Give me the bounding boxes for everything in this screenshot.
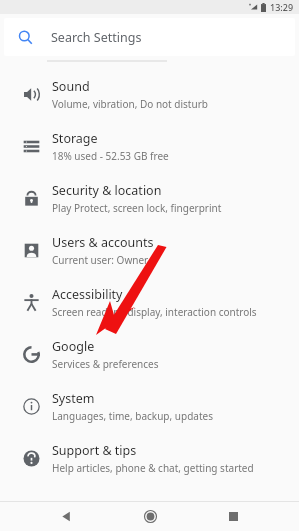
staticText: Support & tips <box>52 442 137 459</box>
button[interactable]: Recent apps <box>216 501 250 531</box>
button[interactable]: Accessibility <box>0 276 299 328</box>
button[interactable]: Storage <box>0 120 299 172</box>
button[interactable]: Home <box>133 501 167 531</box>
staticText: Search Settings <box>51 29 142 46</box>
staticText: Accessibility <box>52 286 123 303</box>
staticText: Help articles, phone & chat, getting sta… <box>52 461 254 475</box>
button[interactable]: Sound <box>0 68 299 120</box>
button[interactable]: Search Settings <box>4 18 295 56</box>
button[interactable]: Support & tips <box>0 432 299 484</box>
staticText: Security & location <box>52 182 162 199</box>
button[interactable]: System <box>0 380 299 432</box>
staticText: Volume, vibration, Do not disturb <box>52 97 208 111</box>
staticText: System <box>52 390 95 407</box>
staticText: Google <box>52 338 95 355</box>
staticText: Services & preferences <box>52 357 159 371</box>
staticText: 18% used - 52.53 GB free <box>52 149 169 163</box>
staticText: Storage <box>52 130 98 147</box>
button[interactable]: Users & accounts <box>0 224 299 276</box>
staticText: Screen readers, display, interaction con… <box>52 305 257 319</box>
staticText: Sound <box>52 78 90 95</box>
staticText: Play Protect, screen lock, fingerprint <box>52 201 222 215</box>
button[interactable]: Google <box>0 328 299 380</box>
staticText: Languages, time, backup, updates <box>52 409 213 423</box>
staticText: Users & accounts <box>52 234 154 251</box>
button[interactable]: Back <box>49 501 83 531</box>
button[interactable]: Security & location <box>0 172 299 224</box>
staticText: Current user: Owner <box>52 253 149 267</box>
staticText: 13:29 <box>270 1 294 13</box>
